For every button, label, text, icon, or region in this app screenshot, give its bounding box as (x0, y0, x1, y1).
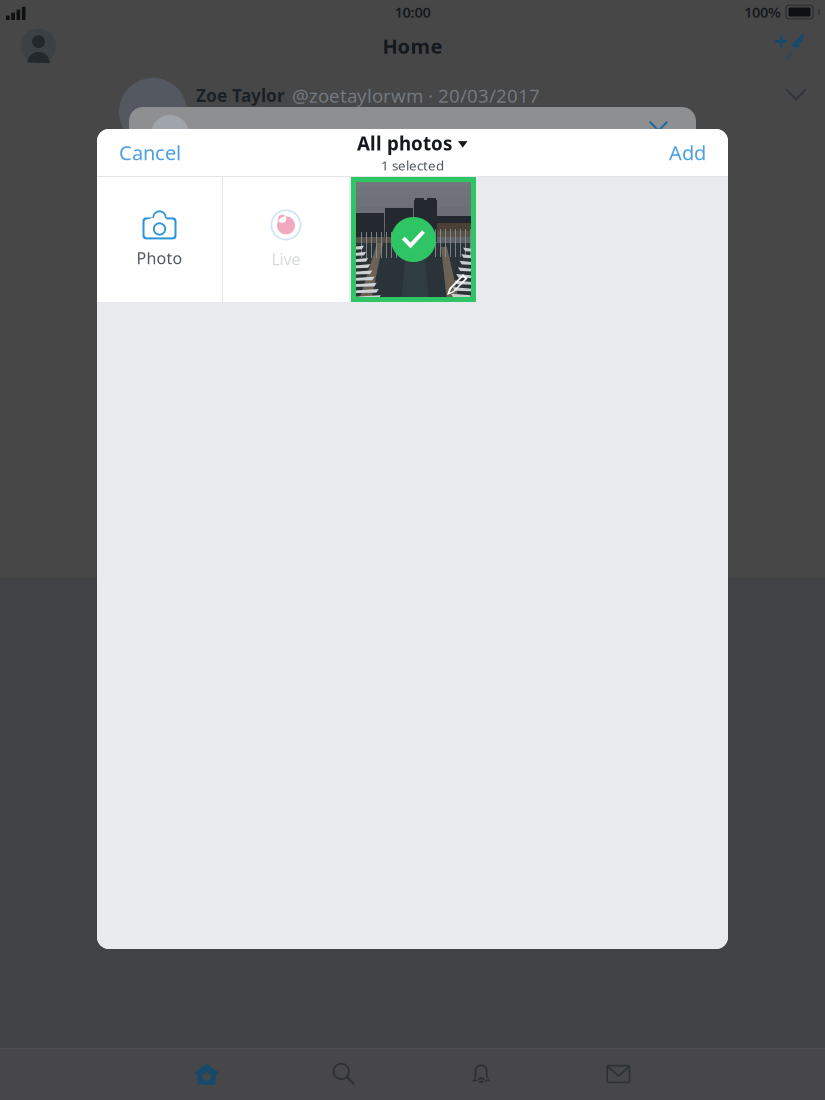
button[interactable]: Messages (550, 1048, 687, 1100)
button[interactable]: Add (651, 126, 728, 179)
button[interactable]: Search (275, 1048, 412, 1100)
button[interactable]: Photo (97, 177, 222, 302)
staticText: Home (382, 33, 442, 59)
staticText: 1 selected (381, 156, 444, 174)
button[interactable]: Profile (21, 28, 56, 63)
staticText: All photos (357, 131, 452, 156)
button[interactable]: All photos album picker (347, 126, 478, 179)
staticText: Photo (136, 247, 182, 269)
button[interactable]: Home (138, 1048, 275, 1100)
button[interactable]: Compose Tweet (775, 31, 805, 61)
staticText: Add (669, 139, 706, 166)
staticText: Cancel (119, 139, 181, 166)
button[interactable]: Live (223, 177, 349, 302)
button[interactable]: Selected photo (349, 177, 476, 302)
staticText: 10:00 (394, 2, 430, 22)
staticText: 100% (744, 2, 781, 22)
staticText: @zoetaylorwm · 20/03/2017 (292, 83, 540, 108)
button[interactable]: Cancel (97, 126, 199, 179)
staticText: Live (271, 248, 300, 270)
staticText: Zoe Taylor (196, 84, 285, 107)
